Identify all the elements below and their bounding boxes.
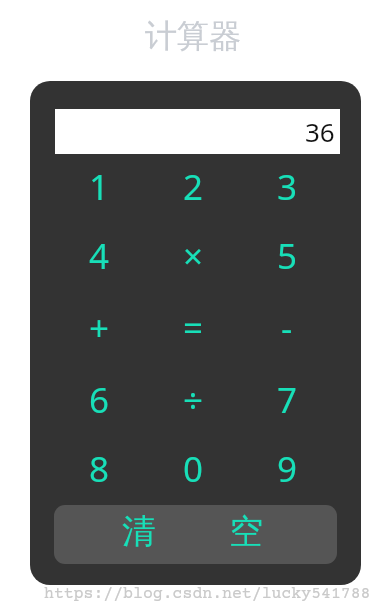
button[interactable]: 6 xyxy=(59,370,139,430)
button[interactable]: 9 xyxy=(247,439,327,499)
staticText: 5 xyxy=(277,232,298,280)
staticText: 空 xyxy=(229,510,263,553)
staticText: 4 xyxy=(89,232,110,280)
button[interactable]: 7 xyxy=(247,370,327,430)
staticText: 36 xyxy=(305,114,335,149)
staticText: 3 xyxy=(277,163,298,211)
button[interactable]: 0 xyxy=(153,439,233,499)
staticText: 1 xyxy=(89,163,110,211)
staticText: 7 xyxy=(277,376,298,424)
button[interactable]: 4 xyxy=(59,226,139,286)
staticText: 8 xyxy=(89,445,110,493)
button[interactable]: × xyxy=(153,226,233,286)
staticText: ÷ xyxy=(183,376,204,424)
button[interactable]: = xyxy=(153,298,233,358)
staticText: 6 xyxy=(89,376,110,424)
staticText: + xyxy=(89,304,110,352)
staticText: - xyxy=(281,304,293,352)
staticText: 9 xyxy=(277,445,298,493)
button[interactable]: ÷ xyxy=(153,370,233,430)
staticText: 0 xyxy=(183,445,204,493)
staticText: 2 xyxy=(183,163,204,211)
button[interactable]: 清 xyxy=(54,505,337,564)
staticText: = xyxy=(183,304,204,352)
button[interactable]: 3 xyxy=(247,157,327,217)
staticText: × xyxy=(183,232,204,280)
button[interactable]: - xyxy=(247,298,327,358)
button[interactable]: 1 xyxy=(59,157,139,217)
button[interactable]: 36 xyxy=(55,109,340,154)
button[interactable]: 5 xyxy=(247,226,327,286)
button[interactable]: + xyxy=(59,298,139,358)
staticText: https://blog.csdn.net/lucky541788 xyxy=(44,585,371,604)
button[interactable]: 8 xyxy=(59,439,139,499)
staticText: 清 xyxy=(122,510,156,553)
button[interactable]: 2 xyxy=(153,157,233,217)
staticText: 计算器 xyxy=(145,16,241,56)
